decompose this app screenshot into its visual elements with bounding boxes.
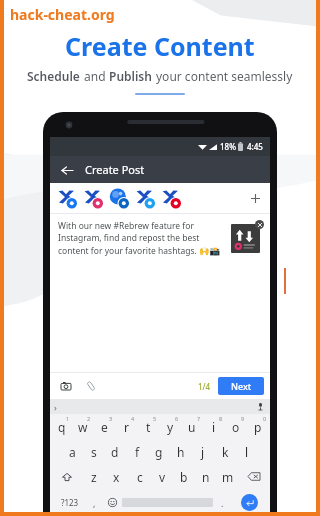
button[interactable]: Pinterest bbox=[161, 188, 181, 208]
button[interactable]: e bbox=[93, 414, 115, 439]
button[interactable]: s bbox=[83, 439, 104, 464]
button[interactable]: z bbox=[82, 464, 105, 489]
button[interactable]: w bbox=[72, 414, 93, 439]
button[interactable]: Attached image bbox=[231, 224, 260, 253]
staticText: . bbox=[221, 497, 224, 509]
button[interactable]: Backspace bbox=[239, 464, 269, 489]
button[interactable]: f bbox=[126, 439, 148, 464]
staticText: 4:45 bbox=[247, 141, 263, 152]
button[interactable]: Instagram bbox=[83, 188, 103, 208]
staticText: hack-cheat.org bbox=[10, 5, 115, 24]
button[interactable]: Shift bbox=[51, 464, 82, 489]
button[interactable]: m bbox=[217, 464, 239, 489]
staticText: f bbox=[135, 444, 140, 460]
button[interactable]: Add account bbox=[247, 190, 263, 206]
button[interactable]: g bbox=[148, 439, 170, 464]
button[interactable]: j bbox=[192, 439, 214, 464]
staticText: 1/4 bbox=[198, 381, 211, 392]
staticText: x bbox=[113, 469, 120, 485]
staticText: Create Post bbox=[85, 162, 145, 177]
button[interactable]: r bbox=[115, 414, 137, 439]
staticText: 4 bbox=[131, 415, 135, 422]
staticText: and bbox=[84, 68, 109, 84]
button[interactable]: n bbox=[195, 464, 217, 489]
button[interactable]: Remove attachment bbox=[255, 220, 264, 229]
staticText: your content seamlessly bbox=[156, 68, 293, 84]
staticText: Create Content bbox=[65, 29, 255, 63]
button[interactable]: Facebook bbox=[57, 188, 77, 208]
button[interactable]: p bbox=[247, 414, 269, 439]
staticText: 5 bbox=[153, 415, 157, 422]
staticText: b bbox=[180, 469, 188, 485]
staticText: Next bbox=[231, 380, 252, 392]
staticText: 6 bbox=[175, 415, 179, 422]
staticText: 3 bbox=[109, 415, 113, 422]
button[interactable]: , bbox=[86, 489, 103, 516]
staticText: k bbox=[222, 444, 229, 460]
staticText: h bbox=[177, 444, 185, 460]
staticText: › bbox=[54, 401, 57, 413]
staticText: ?123 bbox=[61, 497, 79, 508]
staticText: y bbox=[167, 419, 174, 435]
staticText: Publish bbox=[109, 68, 156, 84]
button[interactable]: . bbox=[213, 489, 232, 516]
button[interactable]: Enter bbox=[232, 489, 267, 516]
button[interactable]: c bbox=[128, 464, 151, 489]
button[interactable]: x bbox=[105, 464, 128, 489]
staticText: u bbox=[188, 419, 196, 435]
staticText: v bbox=[159, 469, 166, 485]
staticText: s bbox=[91, 444, 97, 460]
staticText: e bbox=[101, 419, 108, 435]
button[interactable]: Attach link bbox=[83, 378, 99, 394]
button[interactable]: l bbox=[236, 439, 258, 464]
staticText: j bbox=[201, 444, 205, 460]
staticText: d bbox=[111, 444, 119, 460]
button[interactable]: q bbox=[51, 414, 72, 439]
staticText: o bbox=[232, 419, 240, 435]
staticText: w bbox=[78, 419, 88, 435]
staticText: 18% bbox=[220, 141, 236, 152]
staticText: 2 bbox=[87, 415, 91, 422]
button[interactable]: t bbox=[137, 414, 159, 439]
button[interactable]: i bbox=[203, 414, 225, 439]
button[interactable]: Next bbox=[218, 377, 264, 395]
button[interactable]: h bbox=[170, 439, 192, 464]
button[interactable]: LinkedIn bbox=[109, 188, 129, 208]
button[interactable]: a bbox=[62, 439, 83, 464]
staticText: 7 bbox=[197, 415, 201, 422]
button[interactable]: Voice input bbox=[255, 401, 266, 412]
staticText: c bbox=[137, 469, 143, 485]
staticText: 0 bbox=[263, 415, 267, 422]
staticText: 1 bbox=[66, 415, 70, 422]
button[interactable]: Twitter bbox=[135, 188, 155, 208]
staticText: With our new #Rebrew feature for Instagr… bbox=[58, 220, 225, 256]
button[interactable]: ?123 bbox=[53, 489, 86, 516]
button[interactable]: Add photo bbox=[58, 378, 74, 394]
staticText: 9 bbox=[241, 415, 245, 422]
button[interactable]: Emoji bbox=[103, 489, 122, 516]
staticText: p bbox=[254, 419, 262, 435]
staticText: n bbox=[202, 469, 210, 485]
staticText: Schedule bbox=[27, 68, 84, 84]
staticText: m bbox=[222, 469, 234, 485]
button[interactable]: b bbox=[173, 464, 195, 489]
staticText: r bbox=[124, 419, 129, 435]
staticText: 8 bbox=[219, 415, 223, 422]
button[interactable]: Back bbox=[57, 160, 77, 180]
staticText: a bbox=[69, 444, 76, 460]
staticText: i bbox=[212, 419, 216, 435]
button[interactable]: v bbox=[151, 464, 173, 489]
button[interactable]: o bbox=[225, 414, 247, 439]
button[interactable]: k bbox=[214, 439, 236, 464]
staticText: l bbox=[245, 444, 249, 460]
staticText: t bbox=[146, 419, 151, 435]
staticText: z bbox=[91, 469, 97, 485]
staticText: g bbox=[155, 444, 163, 460]
staticText: q bbox=[58, 419, 66, 435]
button[interactable]: d bbox=[104, 439, 126, 464]
button[interactable]: y bbox=[159, 414, 181, 439]
staticText: , bbox=[93, 497, 96, 509]
button[interactable]: u bbox=[181, 414, 203, 439]
